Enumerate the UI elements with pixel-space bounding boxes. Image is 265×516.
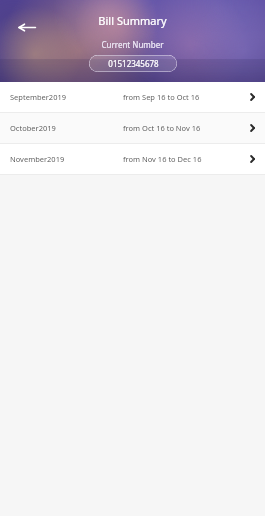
staticText: from Sep 16 to Oct 16 (123, 92, 249, 102)
staticText: Bill Summary (98, 13, 167, 28)
staticText: September2019 (10, 92, 123, 102)
button[interactable]: November2019 (0, 144, 265, 174)
staticText: Current Number (101, 39, 164, 50)
staticText: November2019 (10, 154, 123, 164)
staticText: from Nov 16 to Dec 16 (123, 154, 249, 164)
staticText: October2019 (10, 123, 123, 133)
button[interactable]: October2019 (0, 113, 265, 143)
staticText: from Oct 16 to Nov 16 (123, 123, 249, 133)
button[interactable]: Back (14, 14, 40, 40)
button[interactable]: 01512345678 (89, 55, 177, 72)
staticText: 01512345678 (108, 58, 159, 69)
button[interactable]: September2019 (0, 82, 265, 112)
